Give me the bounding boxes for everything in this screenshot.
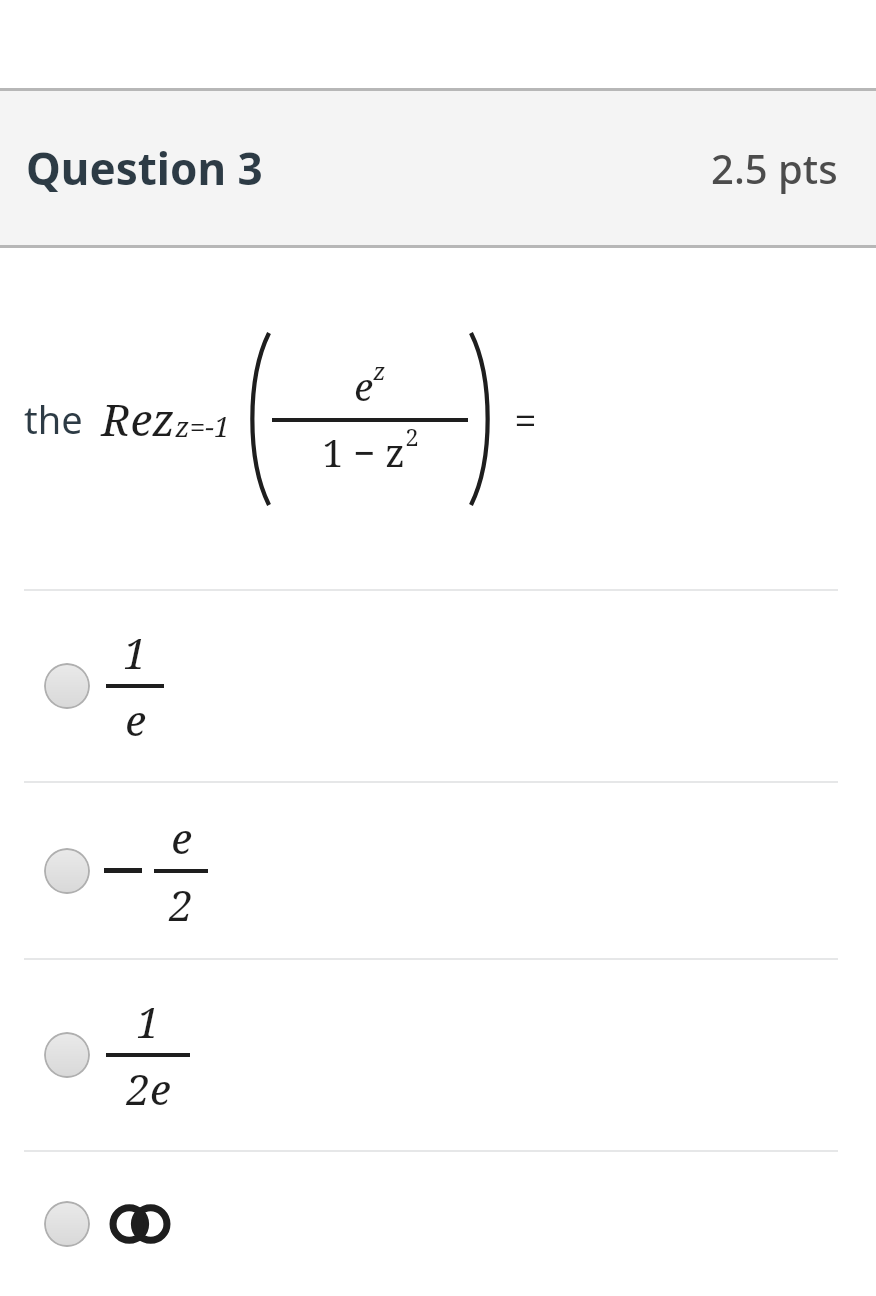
staticText: 2e	[126, 1060, 171, 1117]
staticText: Question 3	[26, 138, 263, 198]
staticText: 2	[405, 420, 419, 453]
staticText: z=−1	[175, 407, 230, 445]
staticText: the	[24, 393, 83, 445]
button[interactable]: Select 1 over 2 e	[0, 960, 876, 1150]
staticText: 2	[169, 876, 193, 933]
staticText: z	[373, 354, 386, 387]
staticText: e	[125, 691, 146, 748]
button[interactable]: Select 1 over e	[0, 591, 876, 781]
other: Select 1 over e	[44, 663, 90, 709]
other: Select 1 over 2 e	[44, 1032, 90, 1078]
staticText: 1 − z	[322, 426, 405, 478]
staticText: 1	[136, 993, 160, 1050]
other: Select minus e over 2	[44, 848, 90, 894]
staticText: =	[514, 392, 537, 446]
other: Select infinity	[44, 1201, 90, 1247]
staticText: 2.5 pts	[711, 141, 838, 195]
other: Infinity	[106, 1202, 174, 1246]
button[interactable]: Select minus e over 2	[0, 783, 876, 958]
staticText: e	[354, 360, 373, 412]
staticText: e	[171, 809, 192, 866]
staticText: Rez	[101, 389, 175, 449]
staticText: 1	[123, 624, 147, 681]
button[interactable]: Select infinity	[0, 1152, 876, 1296]
